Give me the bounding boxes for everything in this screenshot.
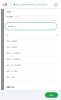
staticText: Last year (6, 76, 15, 78)
button[interactable]: Date: (0, 19, 57, 32)
button[interactable]: Types: (0, 9, 61, 14)
staticText: All (6, 34, 9, 36)
staticText: Last 12 months (6, 64, 21, 66)
staticText: app.safetynetwork.co.uk/filters (16, 3, 47, 6)
staticText: Date: (8, 25, 14, 28)
staticText: ⌄ (55, 15, 57, 18)
staticText: Last month (6, 46, 17, 48)
staticText: aA (3, 2, 7, 6)
staticText: All (13, 10, 16, 13)
staticText: Tags (0) (6, 85, 14, 88)
button[interactable]: Last year (0, 74, 61, 80)
button[interactable]: Year to date (0, 68, 61, 74)
button[interactable]: Address bar (14, 0, 47, 9)
button[interactable]: Tags (0) (6, 84, 56, 89)
staticText: Account: (6, 15, 14, 18)
button[interactable]: All (0, 32, 61, 38)
button[interactable]: Page settings (1, 0, 9, 9)
button[interactable]: Account (51, 0, 60, 9)
staticText: Types: (6, 10, 12, 13)
staticText: All (15, 25, 18, 28)
button[interactable]: Account: (0, 14, 61, 19)
button[interactable]: Last 6 months (0, 56, 61, 62)
staticText: ⌄ (55, 10, 57, 13)
staticText: ✓ (56, 33, 58, 37)
button[interactable]: Apply (45, 92, 58, 98)
staticText: ⌄ (52, 25, 54, 28)
staticText: Last 3 months (6, 52, 20, 54)
staticText: Year to date (6, 70, 18, 72)
staticText: Apply (49, 93, 54, 96)
staticText: This month (6, 40, 17, 42)
staticText: Last 6 months (6, 58, 20, 60)
button[interactable]: Last month (0, 44, 61, 50)
staticText: Select (15, 15, 21, 18)
button[interactable]: Last 12 months (0, 62, 61, 68)
button[interactable]: This month (0, 38, 61, 44)
button[interactable]: Last 3 months (0, 50, 61, 56)
